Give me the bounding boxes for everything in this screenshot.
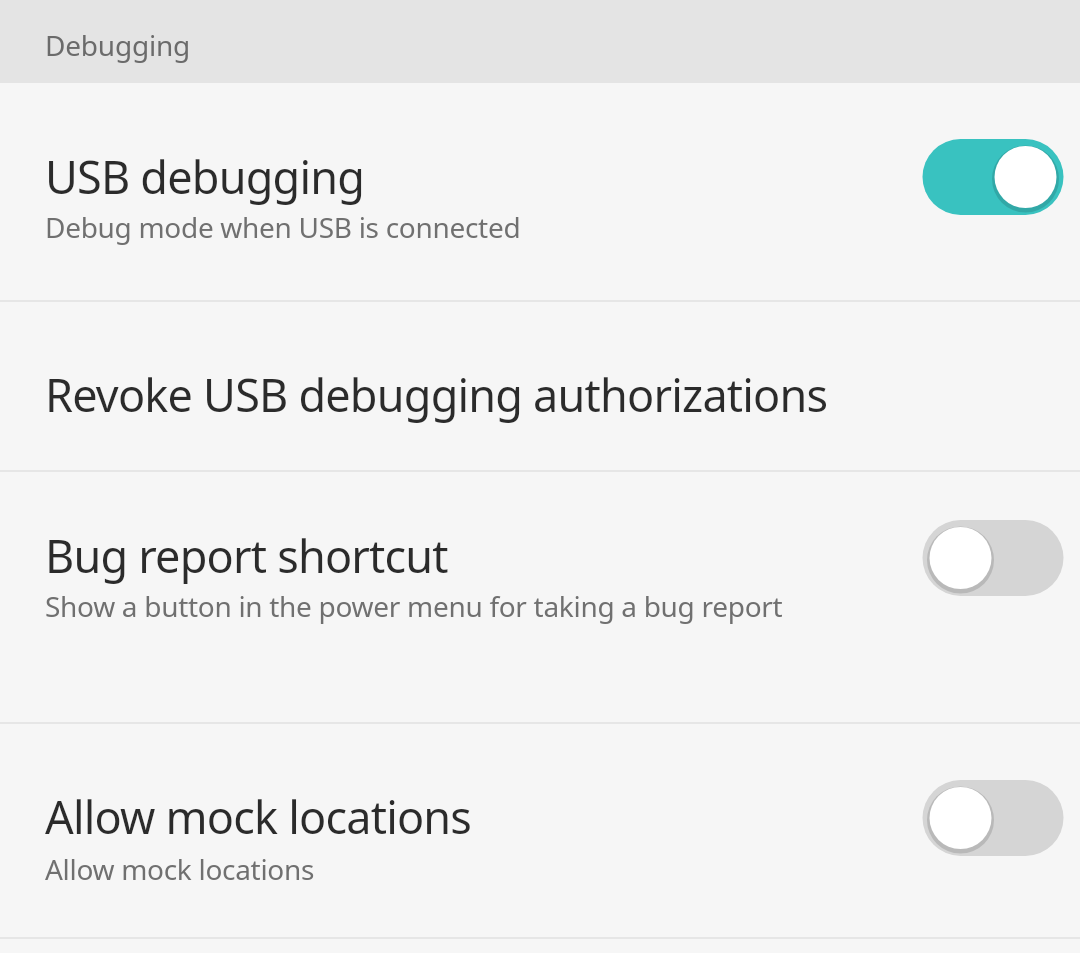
button[interactable]: USB debugging toggle (918, 132, 1068, 222)
staticText: Allow mock locations (45, 786, 472, 847)
button[interactable]: Bug report shortcut (0, 472, 1080, 722)
button[interactable]: Revoke USB debugging authorizations (0, 302, 1080, 470)
staticText: Allow mock locations (45, 850, 315, 888)
button[interactable]: USB debugging (0, 83, 1080, 300)
staticText: Debugging (45, 26, 191, 64)
staticText: USB debugging (45, 146, 365, 207)
button[interactable]: Allow mock locations toggle (918, 773, 1068, 863)
staticText: Show a button in the power menu for taki… (45, 587, 805, 625)
staticText: Debug mode when USB is connected (45, 208, 521, 246)
button[interactable]: Bug report shortcut toggle (918, 513, 1068, 603)
staticText: Bug report shortcut (45, 525, 448, 586)
button[interactable]: Allow mock locations (0, 724, 1080, 937)
staticText: Revoke USB debugging authorizations (45, 364, 828, 425)
